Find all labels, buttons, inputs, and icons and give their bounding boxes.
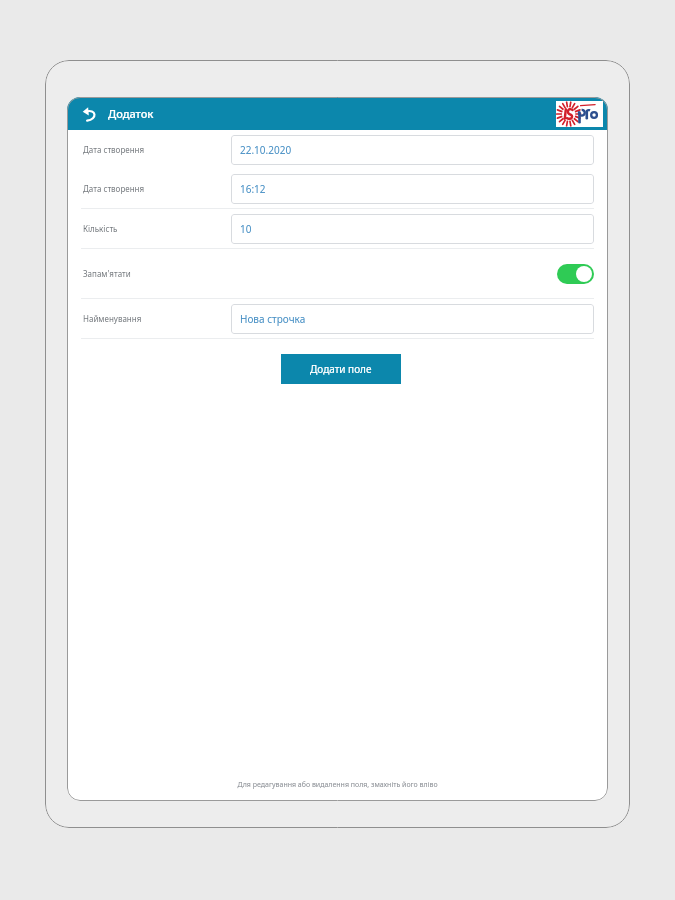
button[interactable]: Назад [78, 103, 100, 125]
button[interactable]: Кількість [67, 209, 608, 248]
staticText: Запам'ятати [83, 268, 557, 279]
staticText: Додати поле [310, 362, 372, 376]
button[interactable]: Дата створення [67, 169, 608, 208]
staticText: Дата створення [83, 144, 231, 155]
button[interactable]: Додати поле [281, 354, 401, 384]
staticText: 16:12 [240, 182, 266, 196]
staticText: Найменування [83, 313, 231, 324]
button[interactable]: Запам'ятати [557, 264, 594, 284]
staticText: Кількість [83, 223, 231, 234]
button[interactable]: IS-pro [556, 101, 603, 127]
staticText: Дата створення [83, 183, 231, 194]
button[interactable]: Найменування [67, 299, 608, 338]
staticText: Нова строчка [240, 312, 306, 326]
staticText: 10 [240, 222, 252, 236]
button[interactable]: Запам'ятати [67, 249, 608, 298]
staticText: Додаток [108, 106, 154, 121]
staticText: Для редагування або видалення поля, змах… [237, 780, 438, 790]
button[interactable]: Дата створення [67, 130, 608, 169]
staticText: 22.10.2020 [240, 143, 292, 157]
